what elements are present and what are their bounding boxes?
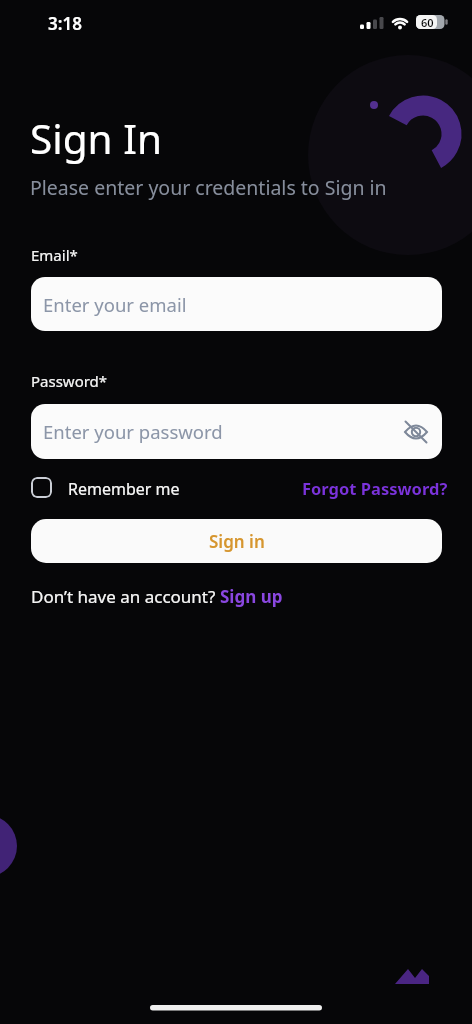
staticText: Enter your email: [43, 292, 187, 317]
button[interactable]: [404, 420, 428, 444]
staticText: Sign In: [30, 111, 162, 166]
staticText: Don’t have an account?: [31, 585, 220, 608]
staticText: Enter your password: [43, 419, 223, 444]
staticText: Email*: [31, 245, 78, 265]
staticText: Sign in: [209, 530, 265, 553]
staticText: Password*: [31, 371, 108, 391]
button[interactable]: [31, 477, 52, 498]
button[interactable]: Enter your password: [31, 404, 442, 459]
staticText: Please enter your credentials to Sign in: [30, 174, 387, 201]
staticText: 60: [421, 15, 434, 30]
button[interactable]: Enter your email: [31, 277, 442, 331]
button[interactable]: Sign up: [220, 585, 283, 608]
button[interactable]: Forgot Password?: [302, 477, 448, 499]
staticText: Remember me: [68, 478, 180, 500]
button[interactable]: Sign in: [31, 519, 442, 563]
staticText: 3:18: [48, 12, 82, 35]
